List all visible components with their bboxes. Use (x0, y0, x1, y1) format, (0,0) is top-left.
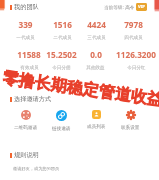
staticText: 15.2502 (46, 49, 77, 60)
other: QR code invite (21, 110, 31, 120)
button[interactable]: 选择邀请方式 (10, 95, 52, 103)
button[interactable]: 1126.3200 (116, 49, 156, 71)
staticText: 4424 (87, 19, 106, 30)
staticText: 今日分佣 (52, 65, 71, 71)
button[interactable]: 我的团队 (10, 3, 39, 11)
button[interactable]: QR code invite (14, 110, 37, 131)
staticText: 11588 (17, 49, 41, 60)
staticText: 高令 (124, 4, 136, 10)
staticText: 一代成员 (16, 35, 35, 41)
button[interactable]: 0.0 (86, 49, 105, 71)
staticText: 其他收益 (86, 65, 105, 71)
staticText: 选择邀请方式 (14, 95, 52, 103)
staticText: 链接邀请 (52, 126, 71, 132)
staticText: 联系设置 (121, 125, 140, 131)
button[interactable]: Contact settings (121, 110, 140, 131)
staticText: 零撸长期稳定管道收益 (1, 67, 159, 109)
staticText: 三代成员 (87, 35, 106, 41)
staticText: 我的团队 (14, 3, 39, 11)
button[interactable]: 15.2502 (46, 49, 77, 71)
button[interactable]: 规则说明 (10, 151, 39, 159)
button[interactable]: 7978 (124, 19, 143, 41)
other: Link invite (56, 110, 67, 121)
staticText: 规则说明 (14, 151, 39, 159)
button[interactable]: 339 (16, 19, 35, 41)
staticText: 7978 (124, 19, 143, 30)
other: Member list (92, 110, 101, 119)
staticText: 1126.3200 (116, 49, 156, 60)
staticText: 339 (18, 19, 33, 30)
button[interactable]: 1516 (53, 19, 72, 41)
staticText: 成员列表 (87, 124, 106, 130)
staticText: VIP (138, 4, 145, 10)
staticText: 二代成员 (53, 35, 72, 41)
button[interactable]: Link invite (52, 110, 71, 132)
button[interactable]: 4424 (87, 19, 106, 41)
staticText: 0.0 (90, 49, 102, 60)
button[interactable]: Member list (87, 110, 106, 130)
other: Contact settings (126, 110, 136, 120)
staticText: 二维码邀请 (14, 125, 37, 131)
staticText: 今日分红 (127, 65, 146, 71)
staticText: 四代成员 (124, 35, 143, 41)
button[interactable]: 11588 (17, 49, 41, 71)
button[interactable]: VIP level (138, 4, 145, 10)
staticText: 邀请好友，成为您的团员 (13, 166, 60, 171)
staticText: 1516 (53, 19, 72, 30)
staticText: 有效成员 (20, 65, 39, 71)
staticText: 当前等级: (104, 4, 124, 10)
